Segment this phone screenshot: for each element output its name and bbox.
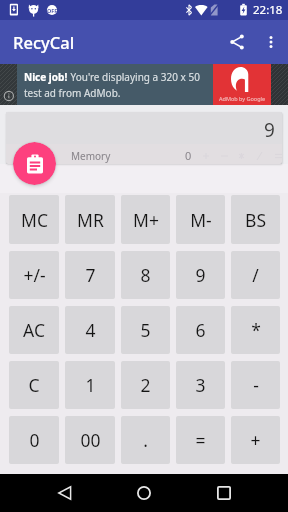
staticText: 9 (264, 117, 275, 143)
button[interactable]: Back (46, 475, 82, 511)
staticText: AdMob by Google (219, 95, 266, 102)
button[interactable]: + (231, 416, 280, 464)
staticText: 0 (29, 428, 40, 452)
staticText: 8 (140, 263, 151, 287)
button[interactable]: MR (65, 195, 115, 244)
button[interactable]: = (176, 416, 225, 464)
button[interactable]: 1 (65, 361, 115, 409)
button[interactable]: 00 (65, 416, 115, 464)
staticText: C (28, 373, 40, 397)
button[interactable]: BS (231, 195, 280, 244)
staticText: You're displaying a 320 x 50 (68, 70, 200, 84)
staticText: 6 (195, 318, 206, 342)
staticText: 1 (85, 373, 96, 397)
button[interactable]: More options (255, 26, 287, 58)
button[interactable]: 0 (9, 416, 59, 464)
staticText: 2 (140, 373, 151, 397)
staticText: 00 (80, 428, 101, 452)
staticText: . (143, 428, 148, 452)
staticText: 0 (185, 148, 192, 163)
button[interactable]: M- (176, 195, 225, 244)
staticText: +/- (23, 263, 46, 287)
staticText: 7 (85, 263, 96, 287)
staticText: M- (190, 208, 212, 232)
staticText: OFF (47, 7, 58, 14)
button[interactable]: +/- (9, 251, 59, 299)
staticText: MR (77, 208, 104, 232)
staticText: 22:18 (253, 2, 283, 18)
button[interactable]: C (9, 361, 59, 409)
button[interactable]: 8 (121, 251, 170, 299)
staticText: 3 (195, 373, 206, 397)
button[interactable]: Memory list (13, 142, 56, 185)
button[interactable]: M+ (121, 195, 170, 244)
button[interactable]: MC (9, 195, 59, 244)
staticText: RecyCal (13, 31, 75, 53)
staticText: 4 (85, 318, 96, 342)
staticText: 9 (195, 263, 206, 287)
staticText: Memory (71, 149, 111, 163)
button[interactable]: Home (126, 475, 162, 511)
button[interactable]: - (231, 361, 280, 409)
button[interactable]: 2 (121, 361, 170, 409)
button[interactable]: 5 (121, 306, 170, 354)
staticText: * (251, 318, 261, 342)
button[interactable]: * (231, 306, 280, 354)
button[interactable]: 3 (176, 361, 225, 409)
staticText: M+ (133, 208, 159, 232)
staticText: MC (21, 208, 48, 232)
button[interactable]: . (121, 416, 170, 464)
button[interactable]: AC (9, 306, 59, 354)
staticText: = (195, 428, 206, 452)
button[interactable]: / (231, 251, 280, 299)
button[interactable]: 4 (65, 306, 115, 354)
button[interactable]: Recents (206, 475, 242, 511)
staticText: / (252, 263, 259, 287)
button[interactable]: 6 (176, 306, 225, 354)
staticText: - (253, 373, 259, 397)
staticText: Nice job! (24, 70, 68, 84)
button[interactable]: Share (221, 26, 253, 58)
staticText: 5 (140, 318, 151, 342)
button[interactable]: 9 (176, 251, 225, 299)
staticText: BS (245, 208, 266, 232)
staticText: AC (23, 318, 45, 342)
staticText: + (250, 428, 261, 452)
button[interactable]: 7 (65, 251, 115, 299)
staticText: test ad from AdMob. (24, 86, 121, 100)
